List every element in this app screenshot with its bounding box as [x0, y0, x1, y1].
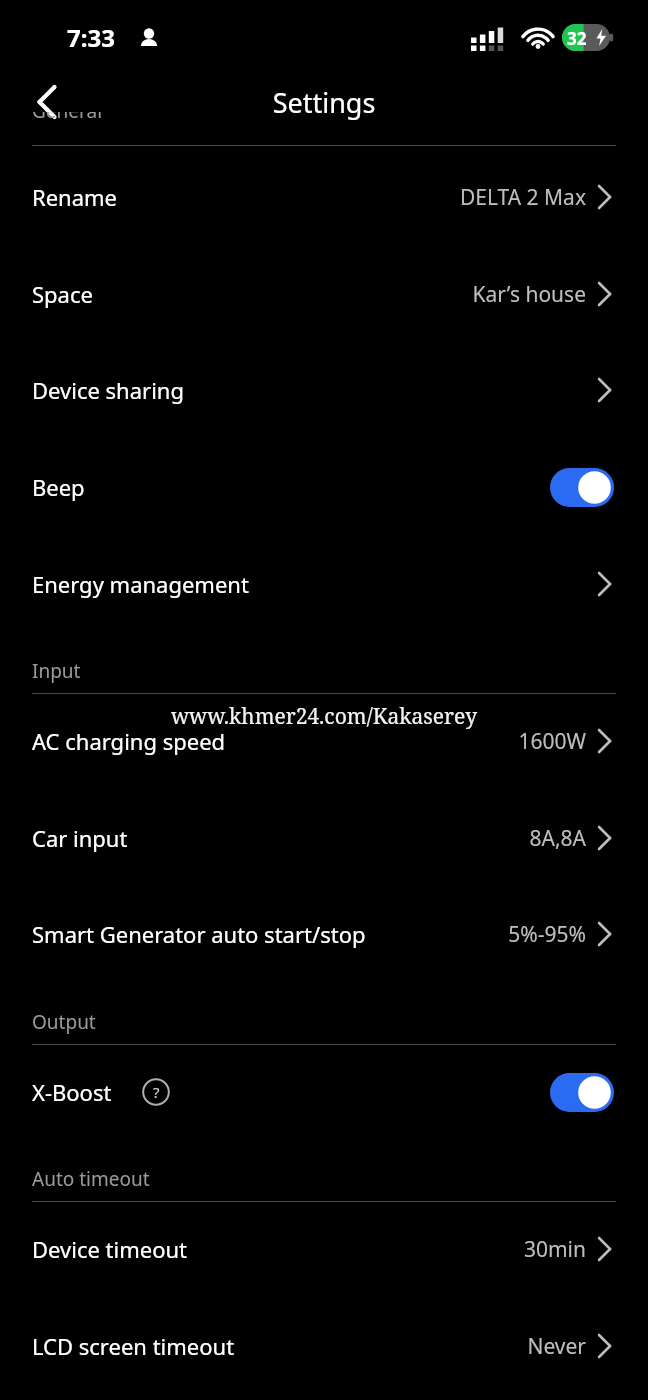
button[interactable]: LCD screen timeout [0, 1312, 648, 1400]
staticText: DELTA 2 Max [300, 183, 586, 212]
button[interactable]: X-Boost [0, 1058, 648, 1400]
staticText: LCD screen timeout [32, 1331, 235, 1361]
staticText: Auto timeout [32, 1166, 150, 1192]
button[interactable]: Space [0, 260, 648, 1400]
staticText: www.khmer24.com/Kakaserey [0, 702, 648, 1400]
staticText: Smart Generator auto start/stop [32, 919, 366, 949]
staticText: 8A,8A [300, 824, 586, 853]
staticText: 7:33 [67, 21, 115, 54]
button[interactable]: Back [16, 76, 78, 128]
staticText: Beep [32, 472, 85, 502]
button[interactable]: Device sharing [0, 356, 648, 1400]
button[interactable]: Rename [0, 163, 648, 1400]
staticText: AC charging speed [32, 726, 226, 756]
staticText: 1600W [300, 727, 586, 756]
button[interactable]: Energy management [0, 550, 648, 1400]
staticText: Car input [32, 823, 128, 853]
button[interactable]: Beep [0, 453, 648, 1400]
button[interactable]: Smart Generator auto start/stop [0, 900, 648, 1400]
button[interactable]: Car input [0, 804, 648, 1400]
staticText: Kar’s house [300, 280, 586, 309]
staticText: Space [32, 279, 93, 309]
button[interactable]: Device timeout [0, 1215, 648, 1400]
staticText: Energy management [32, 569, 249, 599]
staticText: Input [32, 658, 81, 684]
staticText: General [32, 112, 103, 124]
staticText: Device timeout [32, 1234, 188, 1264]
staticText: Settings [0, 84, 648, 1400]
staticText: Rename [32, 182, 118, 212]
staticText: ? [153, 1082, 160, 1102]
staticText: 32 [567, 27, 587, 50]
staticText: Device sharing [32, 375, 184, 405]
staticText: 30min [300, 1235, 586, 1264]
staticText: X-Boost [32, 1077, 112, 1107]
staticText: Never [300, 1332, 586, 1361]
button[interactable]: AC charging speed [0, 707, 648, 1400]
staticText: Output [32, 1009, 96, 1035]
staticText: 5%-95% [300, 920, 586, 949]
